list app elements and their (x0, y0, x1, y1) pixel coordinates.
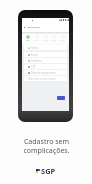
button[interactable] (24, 35, 31, 41)
button[interactable]: Data de nascimento (28, 70, 66, 75)
button[interactable]: CPF (28, 64, 66, 69)
staticText: Data de nascimento (31, 71, 56, 75)
button[interactable] (33, 35, 40, 41)
button[interactable] (59, 35, 66, 41)
staticText: SGP (41, 166, 56, 176)
button[interactable]: Telefone (28, 58, 66, 63)
button[interactable]: Nome (28, 45, 66, 50)
staticText: Selecione o seu estado (28, 77, 56, 81)
button[interactable] (42, 35, 49, 41)
button[interactable]: Selecione o seu estado (28, 76, 66, 81)
staticText: CPF (31, 65, 36, 69)
button[interactable]: Email (28, 52, 66, 57)
button[interactable] (24, 23, 67, 32)
staticText: Nome (31, 46, 39, 50)
button[interactable]: Continuar (57, 96, 65, 100)
staticText: Telefone (31, 59, 42, 63)
staticText: Email (31, 53, 38, 57)
button[interactable] (50, 35, 57, 41)
staticText: Cadastro sem complicações. (23, 137, 70, 155)
